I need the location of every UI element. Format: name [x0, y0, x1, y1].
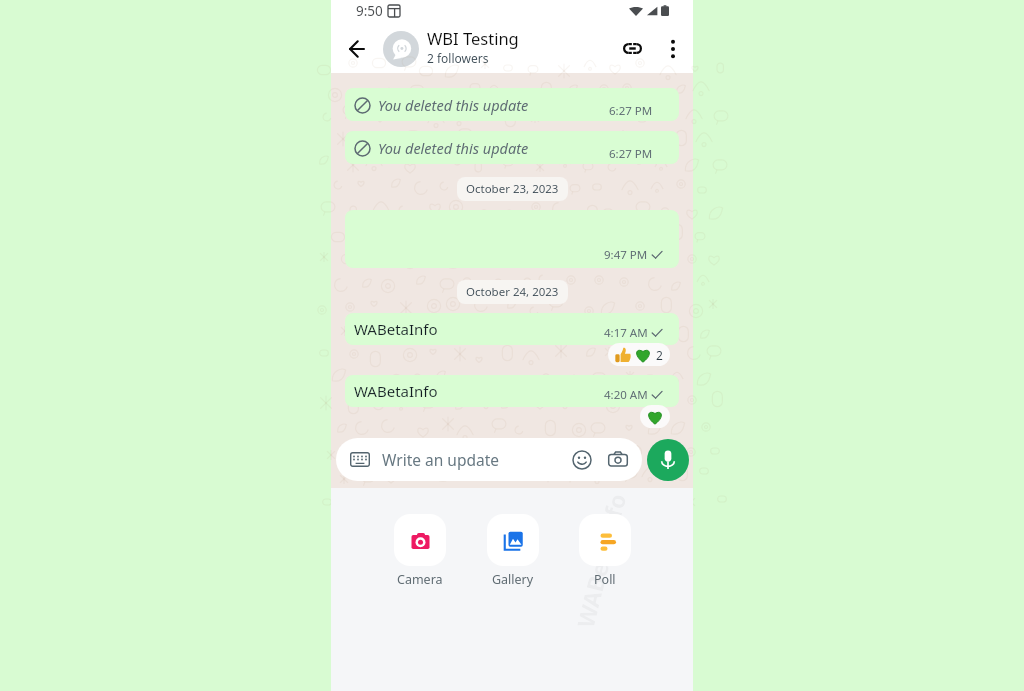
button[interactable]: 9:47 PM	[345, 210, 679, 268]
button[interactable]	[640, 405, 670, 428]
staticText: WABetaInfo	[354, 319, 438, 339]
button[interactable]: Keyboard	[336, 438, 642, 481]
button[interactable]: Camera	[394, 514, 446, 588]
button[interactable]: Back	[331, 24, 383, 73]
staticText: You deleted this update	[378, 138, 529, 158]
button[interactable]: You deleted this update	[345, 131, 679, 164]
staticText: 2	[656, 347, 663, 363]
button[interactable]: Copy channel link	[611, 24, 653, 73]
staticText: 6:27 PM	[609, 103, 653, 119]
button[interactable]: More options	[653, 24, 693, 73]
staticText: October 24, 2023	[466, 284, 559, 300]
staticText: 4:20 AM	[604, 387, 648, 403]
button[interactable]: You deleted this update	[345, 88, 679, 121]
staticText: 9:47 PM	[604, 247, 648, 263]
staticText: WBI Testing	[427, 27, 519, 49]
button[interactable]: Poll	[579, 514, 631, 588]
button[interactable]: Keyboard	[350, 452, 370, 467]
button[interactable]: Camera	[608, 450, 628, 470]
button[interactable]: Emoji	[572, 450, 592, 470]
button[interactable]: 2	[608, 343, 670, 366]
staticText: 2 followers	[427, 50, 489, 66]
button[interactable]: WABetaInfo	[345, 313, 679, 345]
staticText: 9:50	[356, 2, 383, 20]
staticText: WABetaInfo	[354, 381, 438, 401]
staticText: Camera	[397, 571, 443, 588]
staticText: Poll	[594, 571, 616, 588]
button[interactable]: Gallery	[487, 514, 539, 588]
button[interactable]: Record voice update	[647, 439, 689, 481]
staticText: 4:17 AM	[604, 325, 648, 341]
button[interactable]: WABetaInfo	[345, 375, 679, 407]
staticText: 6:27 PM	[609, 146, 653, 162]
staticText: Write an update	[382, 449, 500, 470]
staticText: You deleted this update	[378, 95, 529, 115]
staticText: October 23, 2023	[466, 181, 559, 197]
button[interactable]: Channel avatar	[383, 31, 419, 67]
staticText: Gallery	[492, 571, 534, 588]
